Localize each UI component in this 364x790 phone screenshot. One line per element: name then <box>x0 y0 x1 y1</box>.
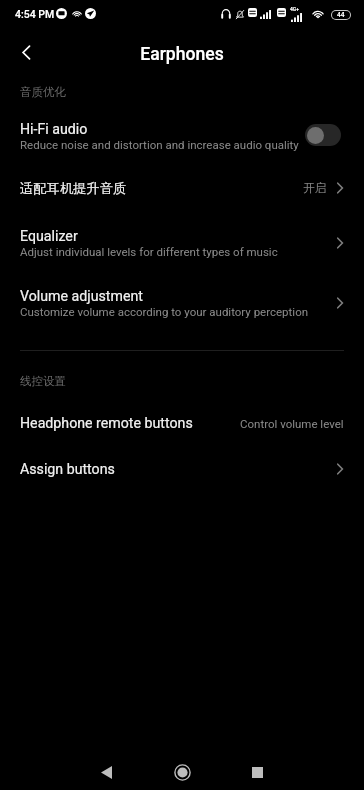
staticText: Assign buttons <box>20 461 115 478</box>
staticText: Control volume level <box>240 417 344 430</box>
staticText: Headphone remote buttons <box>20 415 193 432</box>
staticText: 4:54 PM <box>15 8 55 20</box>
staticText: Reduce noise and distortion and increase… <box>20 138 299 151</box>
staticText: Earphones <box>0 44 364 65</box>
button[interactable]: Assign buttons <box>0 447 364 491</box>
staticText: 4G+ <box>290 6 300 12</box>
staticText: Equalizer <box>20 228 78 245</box>
button[interactable]: Back <box>2 28 50 76</box>
staticText: 音质优化 <box>20 85 66 99</box>
button[interactable]: 适配耳机提升音质 <box>0 168 364 208</box>
staticText: Customize volume according to your audit… <box>20 305 309 318</box>
button[interactable]: Volume adjustment <box>0 277 364 322</box>
staticText: 线控设置 <box>20 374 66 388</box>
staticText: Hi-Fi audio <box>20 121 88 138</box>
button[interactable]: Recents <box>235 754 279 790</box>
button[interactable]: Home <box>160 754 204 790</box>
button[interactable]: Back <box>84 754 128 790</box>
staticText: 开启 <box>303 181 327 196</box>
staticText: 44 <box>337 11 345 19</box>
staticText: 适配耳机提升音质 <box>20 180 303 197</box>
staticText: Volume adjustment <box>20 288 143 305</box>
button[interactable]: Equalizer <box>0 217 364 262</box>
button[interactable]: Headphone remote buttons <box>0 401 364 445</box>
staticText: Adjust individual levels for different t… <box>20 245 278 258</box>
button[interactable]: Hi-Fi audio toggle <box>305 124 341 146</box>
button[interactable]: Hi-Fi audio <box>0 110 364 155</box>
